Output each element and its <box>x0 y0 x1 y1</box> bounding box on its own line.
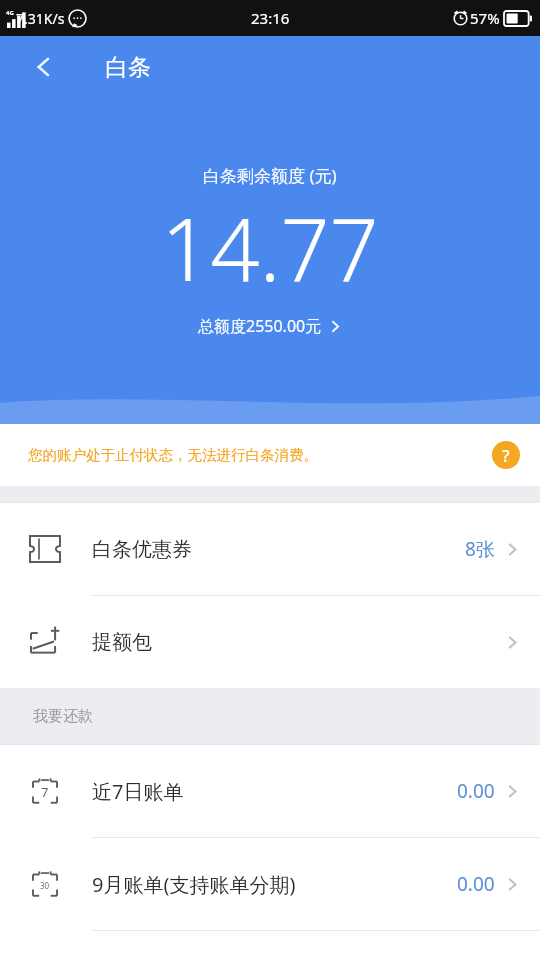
button[interactable]: Back <box>18 41 70 93</box>
staticText: ? <box>502 444 510 467</box>
staticText: 57% <box>470 8 500 28</box>
staticText: 7.31K/s <box>16 9 65 28</box>
staticText: 提额包 <box>92 630 505 655</box>
button[interactable]: 30 <box>0 838 540 931</box>
staticText: 23:16 <box>251 8 290 28</box>
staticText: 白条 <box>105 53 151 82</box>
staticText: 9月账单(支持账单分期) <box>92 871 457 898</box>
staticText: 4G <box>6 9 14 17</box>
staticText: 14.77 <box>161 189 379 306</box>
button[interactable]: 白条优惠券 <box>0 503 540 596</box>
staticText: 7 <box>41 783 49 801</box>
staticText: 您的账户处于止付状态，无法进行白条消费。 <box>28 446 492 464</box>
button[interactable]: 您的账户处于止付状态，无法进行白条消费。 <box>0 424 540 486</box>
staticText: 总额度2550.00元 <box>198 315 322 337</box>
staticText: 0.00 <box>457 871 495 897</box>
staticText: 白条优惠券 <box>92 537 465 562</box>
staticText: 白条剩余额度 (元) <box>203 164 337 187</box>
staticText: 30 <box>40 880 50 891</box>
staticText: 8张 <box>465 536 495 562</box>
staticText: 我要还款 <box>33 707 93 726</box>
button[interactable]: 7 <box>0 745 540 838</box>
staticText: 0.00 <box>457 778 495 804</box>
button[interactable]: 总额度2550.00元 <box>190 312 350 340</box>
staticText: 近7日账单 <box>92 778 457 805</box>
button[interactable]: 提额包 <box>0 596 540 688</box>
button[interactable]: Help <box>492 441 520 469</box>
